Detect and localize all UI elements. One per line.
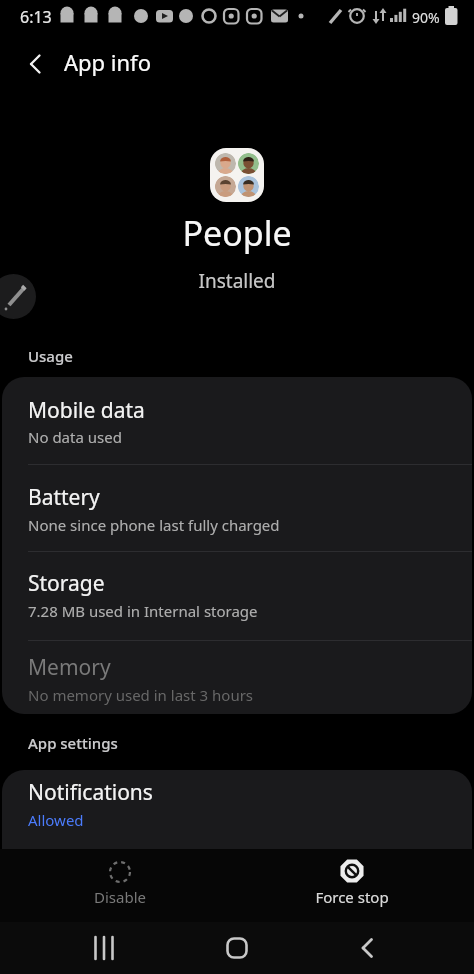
staticText: Force stop (292, 887, 412, 907)
staticText: None since phone last fully charged (28, 515, 280, 535)
button[interactable] (14, 42, 58, 86)
staticText: 90% (412, 8, 440, 27)
button[interactable]: Disable (60, 849, 180, 922)
staticText: Installed (0, 268, 474, 294)
button[interactable]: Force stop (292, 849, 412, 922)
staticText: No memory used in last 3 hours (28, 685, 254, 705)
staticText: Storage (28, 569, 105, 598)
staticText: Memory (28, 653, 111, 682)
staticText: People (0, 210, 474, 256)
button[interactable] (213, 926, 261, 970)
button[interactable] (0, 274, 36, 319)
staticText: No data used (28, 427, 122, 447)
button[interactable]: Notifications (2, 770, 472, 849)
staticText: Usage (28, 346, 73, 366)
button[interactable] (80, 926, 128, 970)
staticText: App settings (28, 733, 118, 753)
button[interactable]: Mobile data (2, 377, 472, 464)
staticText: Notifications (28, 778, 153, 807)
staticText: 6:13 (20, 6, 52, 28)
button[interactable] (344, 926, 392, 970)
staticText: Disable (60, 887, 180, 907)
staticText: Battery (28, 483, 100, 512)
staticText: Allowed (28, 810, 84, 830)
button[interactable]: Storage (2, 552, 472, 640)
button[interactable]: Battery (2, 465, 472, 551)
staticText: Mobile data (28, 396, 145, 425)
staticText: 7.28 MB used in Internal storage (28, 601, 258, 621)
staticText: App info (64, 47, 151, 77)
